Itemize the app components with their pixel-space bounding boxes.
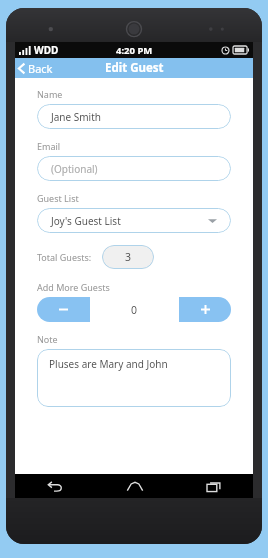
- staticText: (Optional): [51, 162, 98, 176]
- staticText: Email: [37, 140, 61, 152]
- staticText: Back: [28, 61, 53, 76]
- button[interactable]: Back: [15, 474, 95, 498]
- staticText: Pluses are Mary and John: [49, 357, 168, 371]
- button[interactable]: 0: [90, 297, 179, 322]
- button[interactable]: Increase guests: [179, 297, 231, 322]
- staticText: 4:20 PM: [116, 44, 153, 57]
- staticText: Joy's Guest List: [51, 214, 121, 228]
- other: Open guest list dropdown: [208, 218, 217, 224]
- button[interactable]: Joy's Guest List: [37, 208, 231, 233]
- staticText: Jane Smith: [51, 110, 101, 124]
- button[interactable]: 3: [102, 245, 154, 269]
- button[interactable]: Back: [15, 58, 61, 78]
- button[interactable]: Recent apps: [174, 474, 253, 498]
- staticText: 0: [131, 303, 138, 317]
- button[interactable]: Pluses are Mary and John: [37, 349, 231, 407]
- staticText: 3: [125, 250, 132, 264]
- button[interactable]: Home: [95, 474, 174, 498]
- staticText: Total Guests:: [37, 251, 92, 263]
- staticText: Name: [37, 88, 63, 100]
- staticText: Add More Guests: [37, 281, 110, 293]
- staticText: Note: [37, 333, 58, 345]
- button[interactable]: Decrease guests: [37, 297, 90, 322]
- staticText: Edit Guest: [105, 60, 164, 76]
- button[interactable]: Jane Smith: [37, 104, 231, 129]
- button[interactable]: (Optional): [37, 156, 231, 181]
- staticText: WDD: [34, 43, 59, 57]
- staticText: Guest List: [37, 192, 79, 204]
